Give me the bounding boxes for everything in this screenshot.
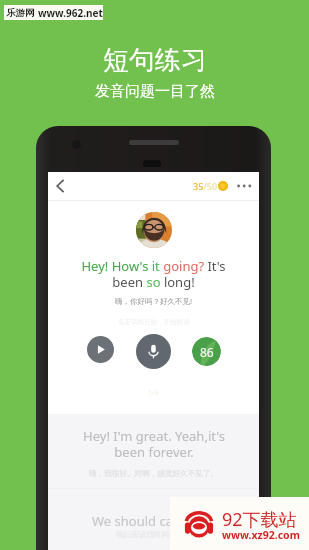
staticText: 我们应该找时间聚聚。 [116, 530, 192, 540]
staticText: 嗨，我很好。对啊，感觉好久不见了。 [89, 469, 219, 479]
staticText: 发音问题一目了然 [95, 82, 215, 101]
staticText: www.962.net [38, 6, 103, 20]
staticText: 乐游网 [6, 7, 35, 19]
button[interactable]: Back [50, 172, 70, 200]
button[interactable]: Play audio [87, 336, 114, 363]
staticText: Hey! How's it going? It's been so long! [72, 257, 235, 290]
button[interactable]: 86 [192, 337, 221, 366]
staticText: 35/50 [193, 180, 218, 192]
button[interactable]: More options [237, 172, 253, 200]
staticText: 短句练习 [103, 44, 207, 77]
staticText: 86 [200, 344, 214, 360]
staticText: We should catch up. [92, 512, 215, 530]
staticText: 嗨，你好吗？好久不见! [115, 296, 193, 306]
staticText: www.xz92.com [222, 528, 300, 542]
staticText: Hey! I'm great. Yeah,it's been forever. [83, 427, 225, 460]
staticText: 点击话筒开始，开始跟读 [118, 318, 190, 326]
staticText: 1/3 [148, 388, 159, 398]
staticText: 92下载站 [222, 507, 297, 532]
button[interactable]: Record voice [136, 334, 171, 369]
